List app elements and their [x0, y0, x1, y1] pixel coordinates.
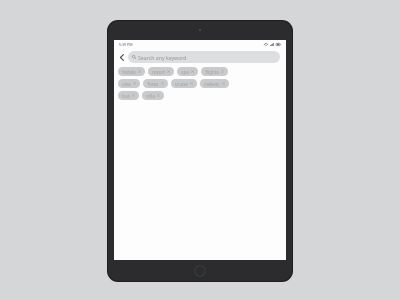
staticText: 5:39 PM	[119, 42, 133, 47]
staticText: forex	[147, 81, 159, 87]
button[interactable]: Home	[194, 265, 206, 277]
staticText: cruise	[175, 81, 188, 87]
staticText: flights	[205, 69, 219, 75]
button[interactable]: villa	[142, 91, 164, 100]
staticText: villa	[146, 93, 155, 99]
button[interactable]: cruise	[171, 79, 197, 88]
button[interactable]: Back	[117, 52, 127, 62]
button[interactable]: spa	[177, 67, 198, 76]
staticText: spa	[181, 69, 189, 75]
staticText: Search any keyword	[138, 54, 187, 61]
button[interactable]: flights	[201, 67, 228, 76]
button[interactable]: resort	[148, 67, 174, 76]
button[interactable]: visa	[118, 79, 140, 88]
staticText: visa	[122, 81, 131, 87]
button[interactable]: forex	[143, 79, 168, 88]
staticText: hotels	[122, 69, 136, 75]
button[interactable]: bus	[118, 91, 139, 100]
staticText: resort	[152, 69, 165, 75]
button[interactable]: hotels	[118, 67, 145, 76]
button[interactable]: Search any keyword	[128, 51, 280, 63]
staticText: bus	[122, 93, 130, 99]
button[interactable]: railway	[200, 79, 229, 88]
staticText: railway	[204, 81, 220, 87]
